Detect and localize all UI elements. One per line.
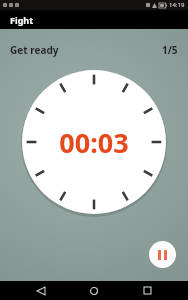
- staticText: 00:03: [59, 124, 129, 161]
- staticText: Get ready: [10, 43, 59, 57]
- staticText: 1/5: [162, 43, 178, 57]
- button[interactable]: Back: [29, 281, 53, 300]
- button[interactable]: Home: [82, 281, 106, 300]
- button[interactable]: Recent apps: [135, 281, 159, 300]
- staticText: Fight: [10, 14, 34, 26]
- staticText: 14:19: [169, 1, 185, 9]
- button[interactable]: Pause: [149, 241, 176, 268]
